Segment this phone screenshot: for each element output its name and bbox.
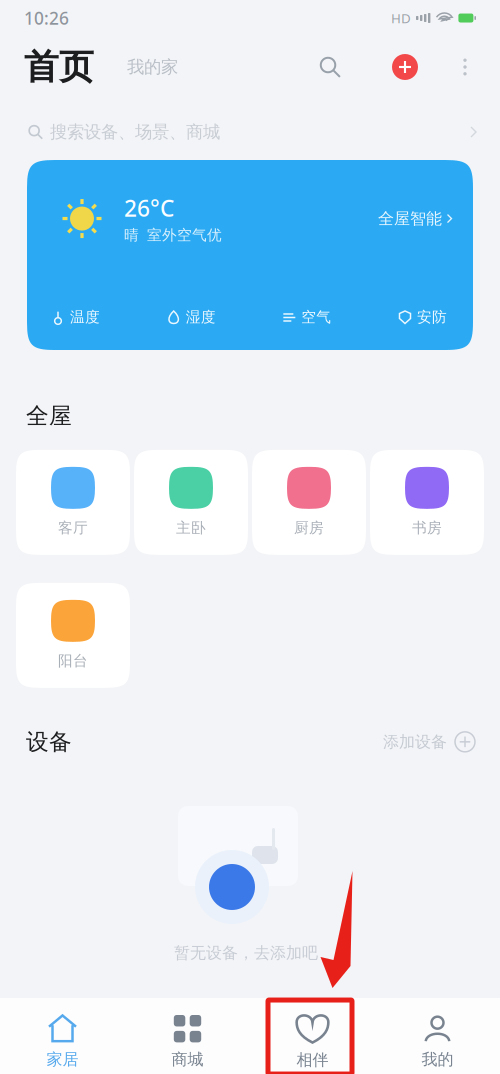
button[interactable]: 阳台 (16, 583, 130, 688)
staticText: 阳台 (58, 652, 88, 670)
staticText: 全屋智能 (378, 209, 442, 228)
button[interactable]: 我的 (375, 998, 500, 1074)
staticText: 暂无设备，去添加吧 (174, 943, 318, 963)
staticText: 商城 (171, 1050, 203, 1069)
staticText: 搜索设备、场景、商城 (50, 121, 220, 143)
staticText: 首页 (24, 46, 94, 88)
staticText: 温度 (70, 308, 100, 326)
staticText: 相伴 (296, 1050, 328, 1070)
button[interactable]: 相伴 (250, 998, 375, 1074)
button[interactable]: 客厅 (16, 450, 130, 555)
staticText: 书房 (412, 519, 442, 537)
staticText: HD (391, 9, 411, 27)
staticText: 晴 室外空气优 (124, 226, 222, 244)
staticText: 厨房 (294, 519, 324, 537)
button[interactable]: 厨房 (252, 450, 366, 555)
button[interactable]: More options (441, 43, 489, 91)
button[interactable]: 家居 (0, 998, 125, 1074)
staticText: 设备 (26, 728, 72, 756)
button[interactable]: 书房 (370, 450, 484, 555)
staticText: 安防 (417, 308, 447, 326)
staticText: 26°C (124, 193, 174, 223)
staticText: 家居 (46, 1050, 78, 1069)
staticText: 湿度 (186, 308, 216, 326)
staticText: 主卧 (176, 519, 206, 537)
staticText: 空气 (301, 308, 331, 326)
button[interactable]: Add device (381, 43, 429, 91)
button[interactable]: 搜索设备、场景、商城 (0, 98, 500, 150)
staticText: 添加设备 (383, 732, 447, 752)
button[interactable]: 商城 (125, 998, 250, 1074)
staticText: 客厅 (58, 519, 88, 537)
staticText: 我的 (421, 1050, 453, 1069)
staticText: 10:26 (24, 6, 69, 29)
button[interactable]: 主卧 (134, 450, 248, 555)
staticText: 我的家 (127, 56, 178, 78)
staticText: 全屋 (26, 402, 72, 430)
button[interactable]: Search (306, 43, 354, 91)
button[interactable]: 添加设备 (383, 726, 476, 758)
